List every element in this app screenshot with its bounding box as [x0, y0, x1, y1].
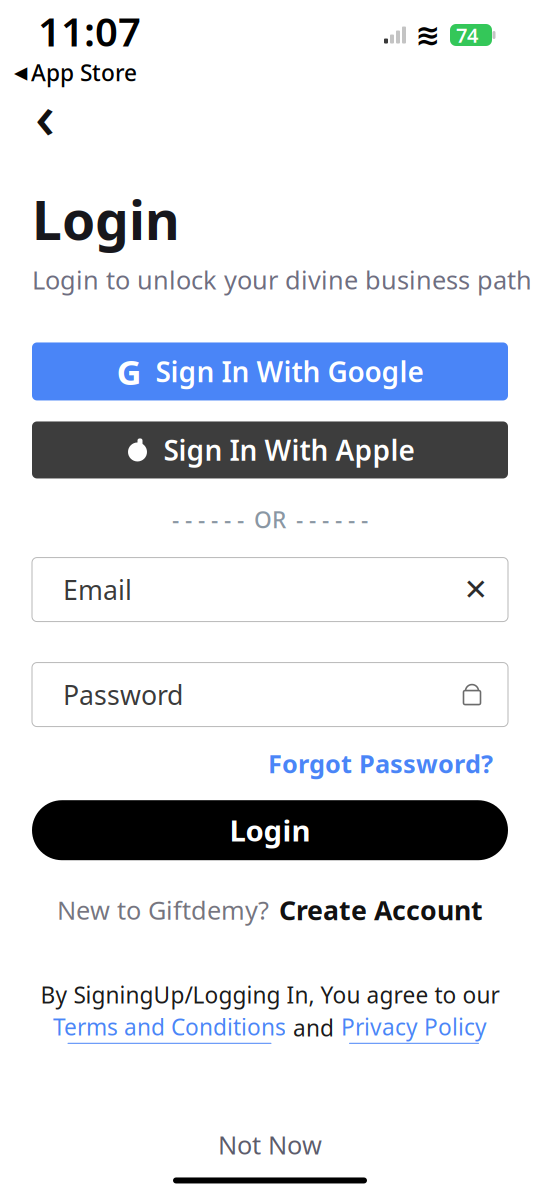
staticText: and — [293, 1013, 334, 1043]
staticText: OR — [254, 504, 286, 535]
staticText: 74 — [456, 22, 478, 48]
staticText: Email — [63, 572, 132, 607]
button[interactable]: Privacy Policy — [341, 1012, 487, 1044]
staticText: ◀ — [14, 63, 27, 82]
staticText: Password — [63, 677, 183, 712]
staticText: Login to unlock your divine business pat… — [32, 263, 532, 296]
staticText: Sign In With Apple — [163, 431, 414, 469]
staticText: 11:07 — [38, 4, 141, 57]
staticText: New to Giftdemy? — [57, 893, 269, 927]
staticText: ≋ — [415, 18, 440, 52]
staticText: Forgot Password? — [268, 747, 493, 780]
staticText: ✕ — [463, 573, 488, 606]
button[interactable]: Sign In With Apple — [32, 421, 508, 478]
staticText: Login — [32, 184, 180, 255]
staticText: Terms and Conditions — [53, 1012, 286, 1042]
button[interactable]: Clear email — [454, 568, 498, 612]
button[interactable]: Terms and Conditions — [53, 1012, 286, 1044]
staticText: Not Now — [218, 1128, 322, 1161]
staticText: G — [116, 348, 141, 394]
button[interactable]: Login — [32, 800, 508, 860]
staticText: Sign In With Google — [155, 353, 423, 390]
staticText: Login — [229, 811, 310, 850]
staticText: By SigningUp/Logging In, You agree to ou… — [40, 980, 499, 1010]
button[interactable]: Create Account — [279, 892, 483, 928]
staticText: Privacy Policy — [341, 1012, 487, 1042]
staticText: ‹ — [35, 74, 55, 156]
staticText: Create Account — [279, 892, 483, 928]
button[interactable]: Back — [18, 88, 72, 142]
button[interactable]: G — [32, 342, 508, 400]
button[interactable]: Not Now — [198, 1120, 342, 1169]
staticText: - - - - - - — [172, 504, 244, 535]
button[interactable]: Forgot Password? — [268, 747, 493, 780]
staticText: App Store — [31, 57, 137, 88]
staticText: - - - - - - — [296, 504, 368, 535]
